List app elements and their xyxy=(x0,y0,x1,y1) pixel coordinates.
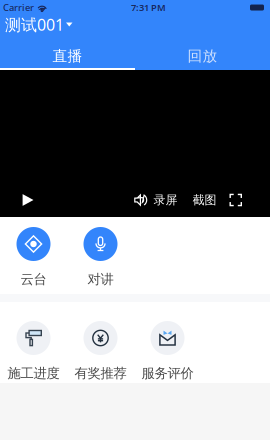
staticText: 截图 xyxy=(192,193,216,207)
button[interactable]: 服务评价 xyxy=(134,321,201,381)
button[interactable]: Play xyxy=(22,194,34,206)
button[interactable]: 施工进度 xyxy=(0,321,67,381)
button[interactable]: 对讲 xyxy=(67,227,134,287)
staticText: 对讲 xyxy=(87,271,113,287)
button[interactable]: 直播 xyxy=(0,42,135,70)
staticText: 回放 xyxy=(187,47,217,65)
staticText: 直播 xyxy=(52,47,82,65)
staticText: 有奖推荐 xyxy=(74,365,126,381)
button[interactable]: Sound xyxy=(134,194,147,206)
staticText: 录屏 xyxy=(153,193,177,207)
button[interactable]: 回放 xyxy=(135,42,270,70)
staticText: 测试001 xyxy=(5,14,64,35)
staticText: 服务评价 xyxy=(141,365,193,381)
button[interactable]: 云台 xyxy=(0,227,67,287)
staticText: 7:31 PM xyxy=(131,1,166,14)
staticText: 云台 xyxy=(20,271,46,287)
button[interactable]: 截图 xyxy=(192,193,216,207)
button[interactable]: Full screen xyxy=(229,194,242,206)
button[interactable]: 录屏 xyxy=(153,193,177,207)
button[interactable]: 有奖推荐 xyxy=(67,321,134,381)
staticText: Carrier xyxy=(3,1,34,14)
staticText: 施工进度 xyxy=(7,365,59,381)
